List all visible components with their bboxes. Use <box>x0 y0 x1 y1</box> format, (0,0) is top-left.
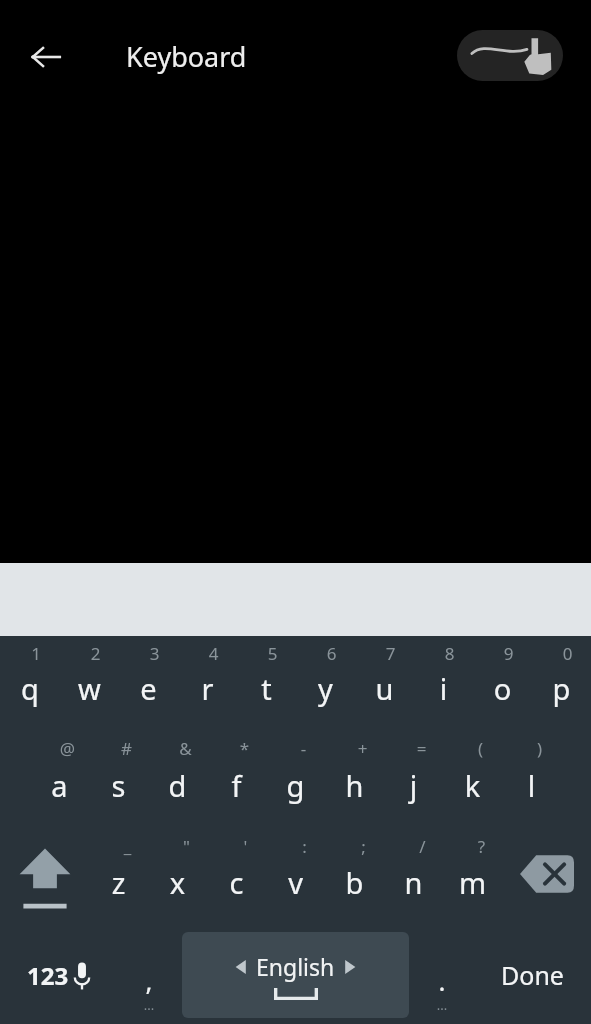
button[interactable]: Backspace <box>502 829 591 926</box>
staticText: y <box>296 669 355 708</box>
button[interactable]: - <box>266 731 325 829</box>
button[interactable]: Shift <box>0 829 89 926</box>
staticText: ... <box>411 996 473 1014</box>
button[interactable]: Back <box>18 29 74 85</box>
button[interactable]: = <box>384 731 443 829</box>
staticText: 5 <box>243 642 302 665</box>
button[interactable]: 5 <box>237 636 296 731</box>
staticText: English <box>256 951 335 982</box>
staticText: w <box>60 669 119 708</box>
staticText: n <box>384 863 443 902</box>
staticText: q <box>0 669 60 708</box>
button[interactable]: _ <box>89 829 148 926</box>
button[interactable]: . <box>411 926 473 1024</box>
staticText: Done <box>501 958 564 992</box>
button[interactable]: 1 <box>0 636 60 731</box>
button[interactable]: / <box>384 829 443 926</box>
staticText: ) <box>510 737 569 760</box>
staticText: s <box>89 766 148 805</box>
button[interactable]: # <box>89 731 148 829</box>
staticText: b <box>325 863 384 902</box>
staticText: i <box>414 669 473 708</box>
staticText: 6 <box>302 642 361 665</box>
button[interactable]: * <box>207 731 266 829</box>
button[interactable]: , <box>118 926 180 1024</box>
staticText: c <box>207 863 266 902</box>
staticText: : <box>275 835 334 858</box>
staticText: . <box>411 963 473 998</box>
staticText: # <box>97 737 156 760</box>
staticText: _ <box>98 835 157 858</box>
button[interactable]: @ <box>30 731 89 829</box>
staticText: * <box>215 737 274 760</box>
staticText: h <box>325 766 384 805</box>
button[interactable]: Done <box>473 926 591 1024</box>
staticText: 8 <box>420 642 479 665</box>
staticText: p <box>532 669 591 708</box>
staticText: m <box>443 863 502 902</box>
staticText: o <box>473 669 532 708</box>
staticText: 9 <box>479 642 538 665</box>
staticText: d <box>148 766 207 805</box>
button[interactable]: ? <box>443 829 502 926</box>
button[interactable]: : <box>266 829 325 926</box>
button[interactable]: ; <box>325 829 384 926</box>
staticText: k <box>443 766 502 805</box>
button[interactable]: 0 <box>532 636 591 731</box>
staticText: 2 <box>66 642 125 665</box>
staticText: l <box>502 766 561 805</box>
staticText: f <box>207 766 266 805</box>
staticText: " <box>157 835 216 858</box>
staticText: 0 <box>538 642 591 665</box>
staticText: z <box>89 863 148 902</box>
staticText: = <box>392 737 451 760</box>
button[interactable]: 6 <box>296 636 355 731</box>
staticText: ... <box>118 996 180 1014</box>
staticText: ; <box>334 835 393 858</box>
staticText: / <box>393 835 452 858</box>
staticText: r <box>178 669 237 708</box>
button[interactable]: ( <box>443 731 502 829</box>
staticText: j <box>384 766 443 805</box>
staticText: @ <box>38 737 97 760</box>
button[interactable]: ) <box>502 731 561 829</box>
staticText: g <box>266 766 325 805</box>
staticText: x <box>148 863 207 902</box>
staticText: e <box>119 669 178 708</box>
staticText: & <box>156 737 215 760</box>
staticText: 1 <box>6 642 66 665</box>
staticText: a <box>30 766 89 805</box>
button[interactable]: ' <box>207 829 266 926</box>
staticText: - <box>274 737 333 760</box>
staticText: ' <box>216 835 275 858</box>
button[interactable]: " <box>148 829 207 926</box>
button[interactable]: Space, English <box>182 932 409 1018</box>
staticText: v <box>266 863 325 902</box>
staticText: t <box>237 669 296 708</box>
staticText: 123 <box>27 959 69 992</box>
button[interactable]: 8 <box>414 636 473 731</box>
staticText: + <box>333 737 392 760</box>
button[interactable]: 9 <box>473 636 532 731</box>
staticText: ( <box>451 737 510 760</box>
staticText: 4 <box>184 642 243 665</box>
staticText: 3 <box>125 642 184 665</box>
staticText: u <box>355 669 414 708</box>
button[interactable]: 2 <box>60 636 119 731</box>
staticText: , <box>118 963 180 998</box>
button[interactable]: 123 <box>0 926 118 1024</box>
button[interactable]: + <box>325 731 384 829</box>
button[interactable]: 4 <box>178 636 237 731</box>
staticText: 7 <box>361 642 420 665</box>
button[interactable]: 7 <box>355 636 414 731</box>
staticText: ? <box>452 835 511 858</box>
button[interactable]: & <box>148 731 207 829</box>
button[interactable]: Gesture typing <box>457 30 563 81</box>
staticText: Keyboard <box>126 38 247 75</box>
button[interactable]: 3 <box>119 636 178 731</box>
